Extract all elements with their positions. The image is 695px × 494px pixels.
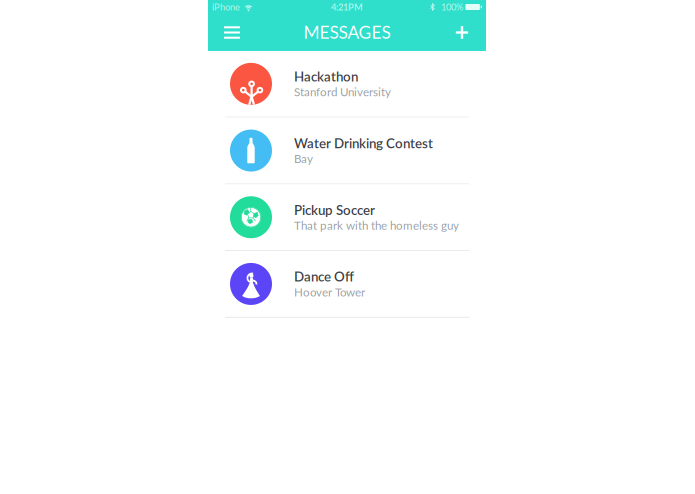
button[interactable]: Dance Off (208, 251, 486, 318)
button[interactable]: Pickup Soccer (208, 184, 486, 251)
staticText: 4:21PM (331, 1, 363, 12)
staticText: Bay (294, 151, 313, 165)
staticText: Hoover Tower (294, 285, 365, 299)
staticText: 100% (441, 1, 463, 13)
staticText: Dance Off (294, 268, 354, 284)
staticText: Stanford University (294, 85, 391, 99)
button[interactable]: Menu (208, 14, 255, 51)
button[interactable]: Hackathon (208, 51, 486, 118)
staticText: iPhone (212, 1, 240, 13)
staticText: That park with the homeless guy (294, 218, 459, 232)
staticText: Pickup Soccer (294, 202, 375, 218)
staticText: MESSAGES (303, 22, 390, 42)
button[interactable]: Water Drinking Contest (208, 118, 486, 184)
staticText: Hackathon (294, 68, 358, 84)
staticText: Water Drinking Contest (294, 135, 433, 151)
button[interactable]: New message (438, 14, 485, 51)
